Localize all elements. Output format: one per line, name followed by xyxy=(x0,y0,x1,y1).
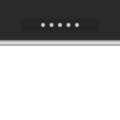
button[interactable]: Passcode field xyxy=(20,18,99,31)
